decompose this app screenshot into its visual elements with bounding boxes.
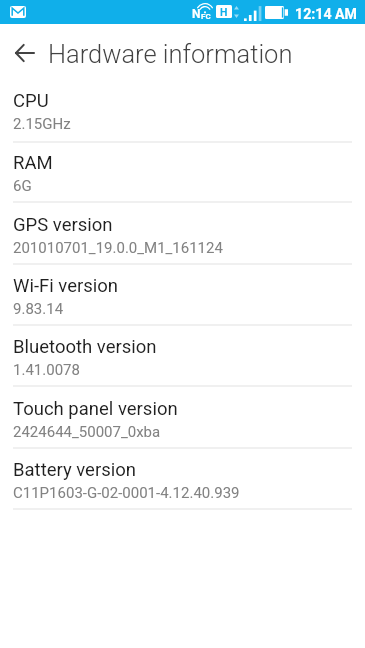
staticText: 201010701_19.0.0_M1_161124 — [13, 239, 223, 257]
staticText: 2.15GHz — [13, 115, 71, 133]
staticText: H — [220, 6, 228, 18]
button[interactable]: Wi-Fi version — [0, 265, 365, 326]
staticText: 2424644_50007_0xba — [13, 423, 161, 441]
staticText: 1.41.0078 — [13, 361, 80, 379]
button[interactable]: RAM — [0, 142, 365, 203]
staticText: Wi-Fi version — [13, 275, 119, 297]
staticText: Battery version — [13, 459, 137, 481]
staticText: 9.83.14 — [13, 300, 64, 318]
staticText: Touch panel version — [13, 398, 178, 420]
staticText: 6G — [13, 177, 32, 195]
staticText: FC — [201, 12, 211, 21]
staticText: GPS version — [13, 214, 113, 236]
button[interactable]: Bluetooth version — [0, 326, 365, 387]
staticText: C11P1603-G-02-0001-4.12.40.939 — [13, 484, 240, 502]
button[interactable]: Battery version — [0, 449, 365, 510]
button[interactable]: GPS version — [0, 204, 365, 265]
staticText: RAM — [13, 152, 53, 174]
staticText: N — [192, 7, 201, 21]
staticText: Bluetooth version — [13, 336, 157, 358]
staticText: 12:14 AM — [295, 6, 358, 23]
staticText: Hardware information — [48, 39, 293, 69]
button[interactable]: CPU — [0, 80, 365, 143]
staticText: CPU — [13, 90, 49, 112]
button[interactable]: Touch panel version — [0, 388, 365, 449]
button[interactable]: Navigate up — [0, 24, 49, 82]
